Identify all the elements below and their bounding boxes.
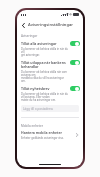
staticText: Mobila enheter xyxy=(21,124,43,128)
staticText: Aviseringsinställningar xyxy=(28,22,73,27)
staticText: Du kommer att behöva ställa in när du vi… xyxy=(21,92,68,101)
staticText: Hantera mobila enheter xyxy=(21,130,62,135)
button[interactable]: Lägg till e-postadress xyxy=(21,105,79,112)
button[interactable]: Tillåt alla aviseringar xyxy=(17,39,83,58)
staticText: Tillåt nyhetsbrev xyxy=(21,86,50,91)
staticText: Tillåt utlappa när bankens behandlar xyxy=(21,60,66,69)
staticText: Tillåt alla aviseringar xyxy=(21,41,57,46)
button[interactable]: Växla Tillåt alla aviseringar xyxy=(70,41,80,46)
button[interactable]: Tillåt nyhetsbrev xyxy=(17,84,83,103)
button[interactable]: Växla Tillåt nyhetsbrev xyxy=(70,86,80,91)
staticText: Du kommer att behöva ställa när som avis… xyxy=(21,70,68,82)
staticText: Du kommer att behöva ställa in när du vi… xyxy=(21,47,68,56)
button[interactable]: Växla Tillåt utlappa när bankens behandl… xyxy=(70,60,80,65)
staticText: Lägg till e-postadress xyxy=(23,107,54,111)
staticText: Aviseringar xyxy=(21,34,38,38)
button[interactable]: Hantera mobila enheter xyxy=(17,129,83,141)
button[interactable]: Tillbaka xyxy=(19,21,27,29)
staticText: Enheter godkänds aviseringar visa. xyxy=(21,136,64,140)
button[interactable]: Tillåt utlappa när bankens behandlar xyxy=(17,58,83,84)
